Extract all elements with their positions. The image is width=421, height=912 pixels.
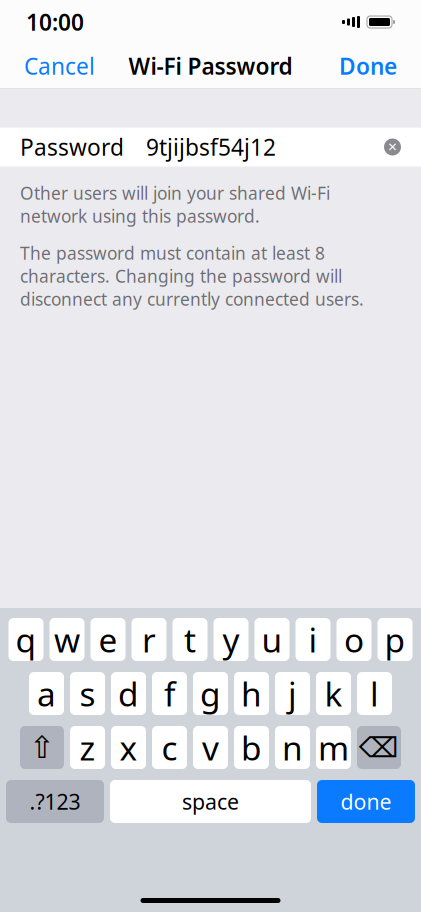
staticText: 9tjijbsf54j12 <box>146 132 276 162</box>
button[interactable]: c <box>152 726 187 769</box>
button[interactable]: o <box>336 618 371 661</box>
button[interactable]: Cancel <box>20 43 99 89</box>
staticText: v <box>202 725 219 770</box>
staticText: a <box>37 671 56 716</box>
button[interactable]: Done <box>335 43 401 89</box>
staticText: z <box>79 725 95 770</box>
button[interactable]: k <box>316 672 351 715</box>
staticText: w <box>54 617 80 662</box>
button[interactable]: Password <box>0 127 421 166</box>
staticText: n <box>282 725 303 770</box>
staticText: Cancel <box>24 51 95 81</box>
button[interactable]: t <box>172 618 207 661</box>
staticText: q <box>15 617 36 662</box>
button[interactable]: d <box>111 672 146 715</box>
button[interactable]: v <box>193 726 228 769</box>
button[interactable]: u <box>254 618 289 661</box>
staticText: Wi-Fi Password <box>128 51 292 81</box>
staticText: Password <box>20 132 124 162</box>
staticText: g <box>200 671 221 716</box>
button[interactable]: i <box>295 618 330 661</box>
staticText: ✕ <box>387 140 397 154</box>
button[interactable]: r <box>131 618 166 661</box>
button[interactable]: Shift <box>20 726 64 769</box>
button[interactable]: x <box>111 726 146 769</box>
button[interactable]: l <box>357 672 392 715</box>
button[interactable]: .?123 <box>6 780 104 823</box>
button[interactable]: Delete <box>357 726 401 769</box>
button[interactable]: b <box>234 726 269 769</box>
staticText: ⇧ <box>29 730 55 765</box>
button[interactable]: a <box>29 672 64 715</box>
staticText: .?123 <box>29 787 80 816</box>
staticText: u <box>261 617 282 662</box>
staticText: i <box>308 617 317 662</box>
staticText: The password must contain at least 8 cha… <box>20 241 364 311</box>
button[interactable]: w <box>49 618 84 661</box>
button[interactable]: j <box>275 672 310 715</box>
button[interactable]: h <box>234 672 269 715</box>
staticText: j <box>288 671 297 716</box>
staticText: l <box>370 671 379 716</box>
staticText: b <box>241 725 262 770</box>
staticText: r <box>142 617 156 662</box>
button[interactable]: f <box>152 672 187 715</box>
button[interactable]: space <box>110 780 311 823</box>
staticText: p <box>384 617 405 662</box>
staticText: o <box>344 617 364 662</box>
button[interactable]: e <box>90 618 125 661</box>
button[interactable]: g <box>193 672 228 715</box>
button[interactable]: m <box>316 726 351 769</box>
button[interactable]: done <box>317 780 415 823</box>
button[interactable]: y <box>213 618 248 661</box>
button[interactable]: n <box>275 726 310 769</box>
staticText: y <box>222 617 239 662</box>
button[interactable]: z <box>70 726 105 769</box>
button[interactable]: q <box>8 618 43 661</box>
staticText: f <box>164 671 175 716</box>
staticText: Done <box>339 51 397 81</box>
button[interactable]: p <box>377 618 412 661</box>
staticText: e <box>98 617 117 662</box>
staticText: m <box>318 725 349 770</box>
staticText: c <box>161 725 177 770</box>
staticText: s <box>79 671 95 716</box>
staticText: h <box>241 671 262 716</box>
button[interactable]: s <box>70 672 105 715</box>
staticText: d <box>118 671 139 716</box>
staticText: 10:00 <box>26 7 84 37</box>
staticText: ⌫ <box>359 732 399 763</box>
staticText: t <box>184 617 196 662</box>
staticText: x <box>119 725 137 770</box>
staticText: Other users will join your shared Wi-Fi … <box>20 181 330 227</box>
staticText: k <box>324 671 342 716</box>
staticText: done <box>340 787 391 816</box>
staticText: space <box>182 787 239 816</box>
